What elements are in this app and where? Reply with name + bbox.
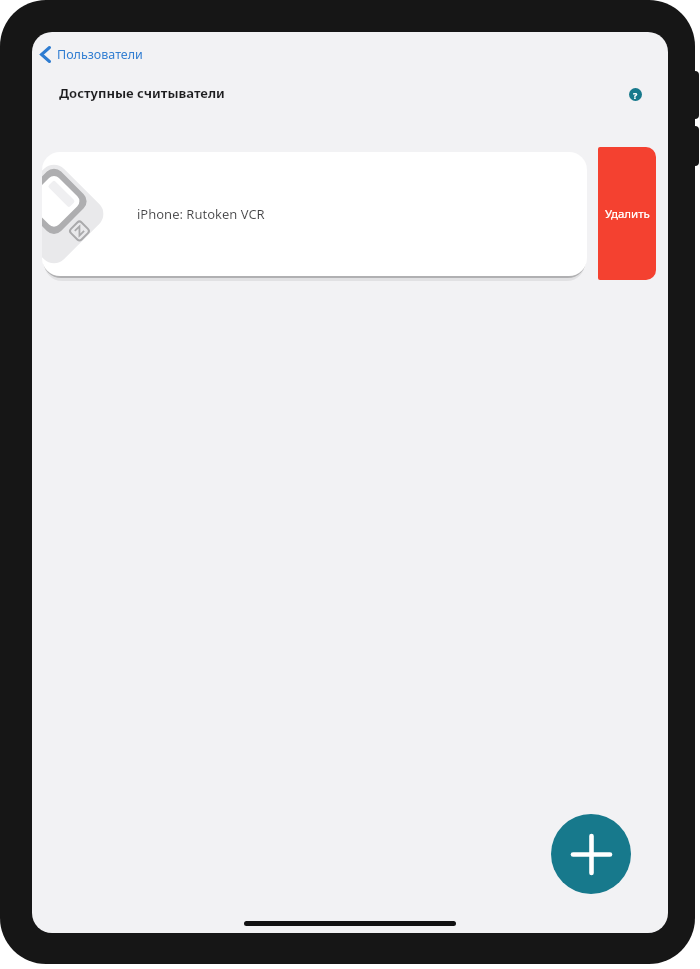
button[interactable]: Пользователи <box>40 46 143 63</box>
button[interactable]: ? <box>629 88 642 101</box>
staticText: Удалить <box>605 206 650 222</box>
staticText: Пользователи <box>57 46 143 63</box>
button[interactable]: Удалить <box>598 147 656 280</box>
staticText: iPhone: Rutoken VCR <box>137 205 265 223</box>
button[interactable]: iPhone: Rutoken VCR <box>42 152 587 276</box>
staticText: Доступные считыватели <box>59 84 225 102</box>
staticText: ? <box>633 89 638 101</box>
button[interactable] <box>551 814 631 894</box>
